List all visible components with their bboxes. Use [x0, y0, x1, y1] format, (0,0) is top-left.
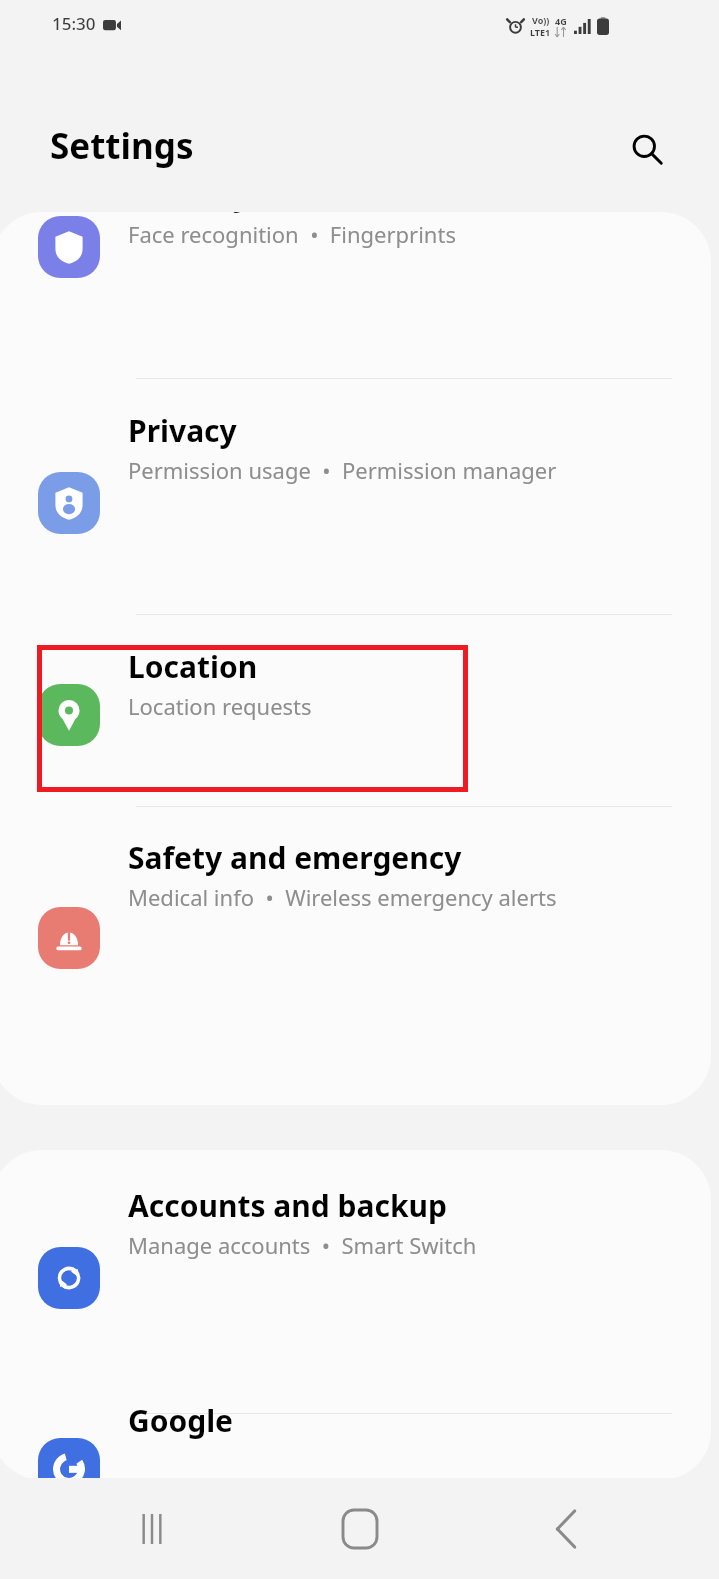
staticText: Permission usage • Permission manager	[128, 455, 557, 485]
staticText: Location requests	[128, 691, 312, 721]
staticText: 15:30	[52, 12, 96, 35]
staticText: Location	[128, 646, 258, 687]
staticText: 4G	[555, 15, 567, 27]
staticText: Safety and emergency	[128, 837, 462, 878]
staticText: Google	[128, 1400, 234, 1441]
button[interactable]: Privacy	[0, 410, 711, 610]
button[interactable]: Location	[0, 646, 711, 846]
staticText: Medical info • Wireless emergency alerts	[128, 882, 557, 912]
staticText: Vo))	[532, 14, 550, 26]
staticText: Manage accounts • Smart Switch	[128, 1230, 477, 1260]
button[interactable]: Back	[512, 1478, 622, 1579]
staticText: Face recognition • Fingerprints	[128, 219, 456, 249]
button[interactable]: Accounts and backup	[0, 1185, 711, 1385]
button[interactable]: Google	[0, 1400, 711, 1480]
staticText: Privacy	[128, 410, 237, 451]
button[interactable]: Security	[0, 212, 711, 374]
staticText: Accounts and backup	[128, 1185, 448, 1226]
button[interactable]: Safety and emergency	[0, 837, 711, 1037]
staticText: LTE1	[530, 26, 551, 38]
button[interactable]: Home	[305, 1478, 415, 1579]
button[interactable]: Recents	[97, 1478, 207, 1579]
staticText: Settings	[50, 122, 194, 170]
staticText: Security	[128, 212, 250, 215]
button[interactable]: Search	[612, 114, 682, 184]
